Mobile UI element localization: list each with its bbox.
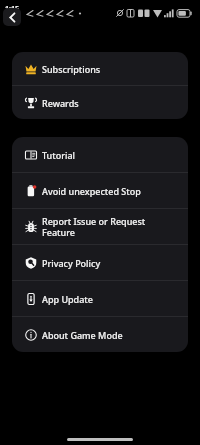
button[interactable]: Back xyxy=(3,8,21,26)
button[interactable]: App Update xyxy=(12,281,188,316)
staticText: App Update xyxy=(42,293,93,305)
button[interactable]: About Game Mode xyxy=(12,317,188,352)
staticText: Report Issue or Request Feature xyxy=(42,215,180,238)
button[interactable]: Report Issue or Request Feature xyxy=(12,209,188,244)
button[interactable]: Tutorial xyxy=(12,137,188,172)
button[interactable]: Subscriptions xyxy=(12,52,188,85)
staticText: Tutorial xyxy=(42,149,76,161)
button[interactable]: Rewards xyxy=(12,86,188,119)
button[interactable]: Avoid unexpected Stop xyxy=(12,173,188,208)
staticText: About Game Mode xyxy=(42,329,123,341)
button[interactable]: Privacy Policy xyxy=(12,245,188,280)
staticText: Subscriptions xyxy=(42,63,101,75)
staticText: Avoid unexpected Stop xyxy=(42,185,141,197)
staticText: 1:15 xyxy=(5,4,19,14)
staticText: Privacy Policy xyxy=(42,257,101,269)
staticText: Rewards xyxy=(42,97,79,109)
